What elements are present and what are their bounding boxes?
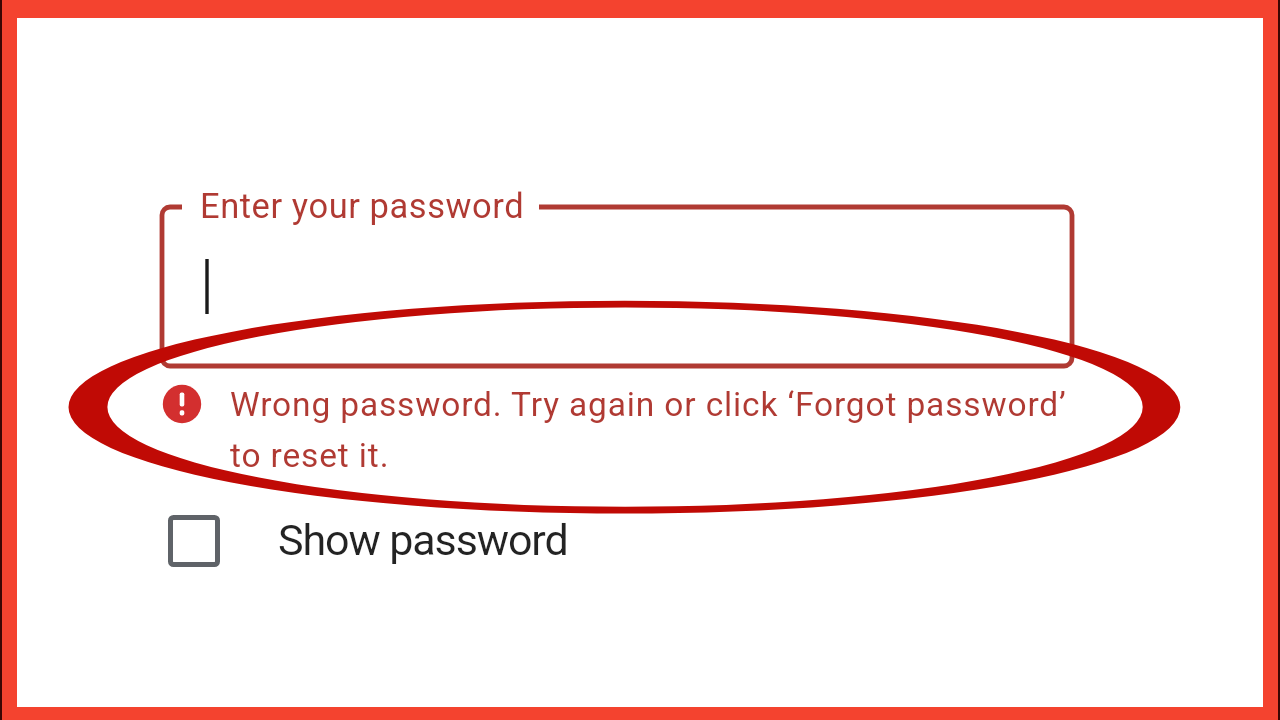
staticText: Show password — [278, 515, 568, 565]
staticText: Wrong password. Try again or click ‘Forg… — [230, 385, 1067, 424]
staticText: Enter your password — [200, 186, 525, 226]
other: Error — [161, 383, 203, 425]
staticText: to reset it. — [230, 436, 390, 475]
button[interactable]: Show password — [160, 505, 580, 577]
button[interactable]: Enter your password — [162, 207, 1072, 366]
